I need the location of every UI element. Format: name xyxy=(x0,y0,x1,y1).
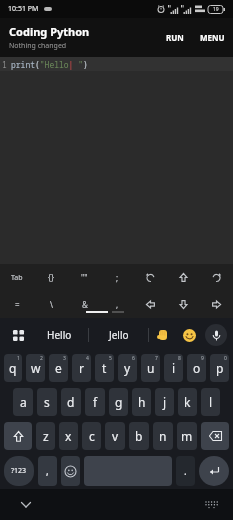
staticText: o xyxy=(193,360,201,376)
button[interactable]: y xyxy=(118,354,137,382)
staticText: 3 xyxy=(63,355,66,362)
staticText: {} xyxy=(48,272,55,283)
button[interactable]: t xyxy=(95,354,114,382)
button[interactable]: f xyxy=(85,388,105,416)
button[interactable]: MENU xyxy=(196,27,229,48)
button[interactable]: s xyxy=(37,388,57,416)
button[interactable] xyxy=(16,495,36,515)
button[interactable]: b xyxy=(129,422,149,450)
staticText: RUN xyxy=(166,32,184,43)
button[interactable]: e xyxy=(49,354,68,382)
staticText: h xyxy=(138,394,146,410)
staticText: 8 xyxy=(178,355,181,362)
button[interactable]: , xyxy=(38,456,57,486)
staticText: Hello xyxy=(47,328,72,342)
button[interactable]: , xyxy=(101,291,134,318)
button[interactable] xyxy=(179,325,199,345)
button[interactable]: g xyxy=(109,388,128,416)
staticText: 19 xyxy=(213,6,219,13)
staticText: m xyxy=(181,428,193,444)
button[interactable]: Tab xyxy=(0,264,34,291)
button[interactable]: {} xyxy=(34,264,68,291)
button[interactable]: q xyxy=(4,354,22,382)
button[interactable]: l xyxy=(201,388,220,416)
button[interactable]: v xyxy=(105,422,125,450)
button[interactable]: j xyxy=(155,388,174,416)
button[interactable]: RUN xyxy=(162,27,188,48)
button[interactable]: & xyxy=(68,291,101,318)
staticText: print("Hello| ") xyxy=(11,59,88,70)
staticText: Nothing changed xyxy=(9,41,67,51)
staticText: 1 xyxy=(2,59,7,70)
staticText: "" xyxy=(81,272,88,283)
staticText: x xyxy=(65,428,72,444)
button[interactable] xyxy=(201,422,229,450)
button[interactable] xyxy=(134,291,167,318)
button[interactable]: k xyxy=(178,388,197,416)
staticText: , xyxy=(116,299,119,310)
staticText: ; xyxy=(116,272,119,283)
staticText: , xyxy=(46,464,49,478)
button[interactable]: \ xyxy=(34,291,68,318)
staticText: ?123 xyxy=(11,466,27,476)
button[interactable]: p xyxy=(210,354,229,382)
staticText: 9 xyxy=(201,355,204,362)
button[interactable] xyxy=(205,324,227,346)
button[interactable] xyxy=(199,456,229,486)
button[interactable]: ; xyxy=(101,264,134,291)
button[interactable]: o xyxy=(187,354,206,382)
button[interactable]: . xyxy=(176,456,195,486)
button[interactable]: n xyxy=(153,422,173,450)
staticText: p xyxy=(216,360,224,376)
button[interactable] xyxy=(134,264,167,291)
button[interactable] xyxy=(200,291,233,318)
button[interactable]: i xyxy=(164,354,183,382)
staticText: l xyxy=(209,394,213,410)
button[interactable]: r xyxy=(72,354,91,382)
staticText: 10:51 PM xyxy=(8,4,39,14)
button[interactable]: w xyxy=(26,354,45,382)
button[interactable]: h xyxy=(132,388,151,416)
staticText: r xyxy=(79,360,84,376)
button[interactable]: d xyxy=(61,388,81,416)
staticText: f xyxy=(93,394,98,410)
button[interactable]: x xyxy=(59,422,78,450)
staticText: 5 xyxy=(109,355,112,362)
button[interactable]: = xyxy=(0,291,34,318)
staticText: t xyxy=(102,360,107,376)
staticText: a xyxy=(20,394,27,410)
staticText: 4 xyxy=(86,355,89,362)
button[interactable]: Hello xyxy=(30,318,88,351)
staticText: g xyxy=(115,394,123,410)
staticText: c xyxy=(89,428,95,444)
staticText: b xyxy=(135,428,143,444)
button[interactable] xyxy=(4,422,32,450)
button[interactable]: Jello xyxy=(89,318,148,351)
button[interactable] xyxy=(6,323,30,347)
staticText: y xyxy=(124,360,131,376)
staticText: u xyxy=(147,360,155,376)
button[interactable]: a xyxy=(13,388,33,416)
staticText: 0 xyxy=(224,355,227,362)
button[interactable]: ?123 xyxy=(4,456,34,486)
button[interactable] xyxy=(167,264,200,291)
button[interactable]: "" xyxy=(68,264,101,291)
staticText: . xyxy=(184,464,187,478)
staticText: e xyxy=(55,360,62,376)
staticText: n xyxy=(159,428,167,444)
staticText: k xyxy=(184,394,191,410)
button[interactable]: z xyxy=(36,422,55,450)
button[interactable]: m xyxy=(177,422,197,450)
staticText: j xyxy=(163,394,167,410)
button[interactable] xyxy=(61,456,80,486)
button[interactable] xyxy=(153,325,173,345)
staticText: Tab xyxy=(11,273,23,283)
staticText: MENU xyxy=(200,32,225,43)
button[interactable] xyxy=(201,495,221,515)
button[interactable] xyxy=(200,264,233,291)
button[interactable]: u xyxy=(141,354,160,382)
staticText: v xyxy=(112,428,119,444)
button[interactable] xyxy=(167,291,200,318)
button[interactable]: c xyxy=(82,422,101,450)
